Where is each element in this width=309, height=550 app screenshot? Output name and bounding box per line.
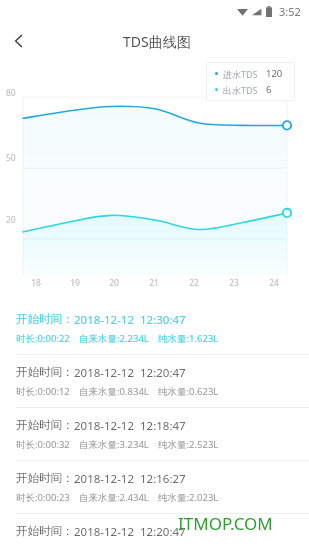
staticText: 纯水量:2.523L	[158, 438, 219, 451]
staticText: 自来水量:2.434L	[79, 491, 149, 504]
button[interactable]: 开始时间：	[0, 355, 309, 407]
button[interactable]: Back	[0, 22, 38, 60]
staticText: 纯水量:0.623L	[158, 385, 219, 398]
staticText: 19	[70, 277, 80, 289]
staticText: 120	[266, 67, 283, 80]
staticText: 进水TDS	[223, 68, 258, 80]
staticText: 时长:0:00:23	[16, 491, 70, 504]
staticText: 出水TDS	[223, 84, 258, 96]
staticText: 2018-12-12 12:30:47	[74, 312, 186, 328]
staticText: 23	[229, 277, 239, 289]
staticText: 开始时间：	[16, 418, 74, 432]
staticText: 3:52	[279, 4, 301, 19]
staticText: 50	[6, 152, 16, 164]
staticText: 2018-12-12 12:20:47	[74, 524, 186, 540]
staticText: 21	[149, 277, 159, 289]
staticText: TDS曲线图	[123, 32, 191, 51]
button[interactable]: 开始时间：	[0, 408, 309, 460]
staticText: 时长:0:00:32	[16, 438, 70, 451]
staticText: 22	[189, 277, 199, 289]
staticText: 开始时间：	[16, 471, 74, 485]
staticText: 80	[6, 87, 16, 99]
staticText: 自来水量:2.234L	[79, 332, 149, 345]
staticText: 纯水量:2.023L	[158, 491, 219, 504]
button[interactable]: 开始时间：	[0, 514, 309, 550]
staticText: 开始时间：	[16, 524, 74, 538]
button[interactable]: 进水TDS	[215, 67, 286, 96]
staticText: 纯水量:1.623L	[158, 332, 219, 345]
staticText: 2018-12-12 12:20:47	[74, 365, 186, 381]
staticText: 2018-12-12 12:16:27	[74, 471, 186, 487]
staticText: 自来水量:3.234L	[79, 438, 149, 451]
staticText: 自来水量:0.834L	[79, 385, 149, 398]
staticText: 20	[109, 277, 119, 289]
staticText: ITMOP.COM	[178, 512, 273, 535]
staticText: 开始时间：	[16, 312, 74, 326]
staticText: 时长:0:00:12	[16, 385, 70, 398]
staticText: 18	[31, 277, 41, 289]
staticText: 2018-12-12 12:18:47	[74, 418, 186, 434]
staticText: 24	[269, 277, 279, 289]
button[interactable]: 开始时间：	[0, 461, 309, 513]
button[interactable]: 开始时间：	[0, 302, 309, 354]
staticText: 6	[266, 83, 272, 96]
staticText: 时长:0:00:22	[16, 332, 70, 345]
staticText: 20	[6, 214, 16, 226]
staticText: 开始时间：	[16, 365, 74, 379]
